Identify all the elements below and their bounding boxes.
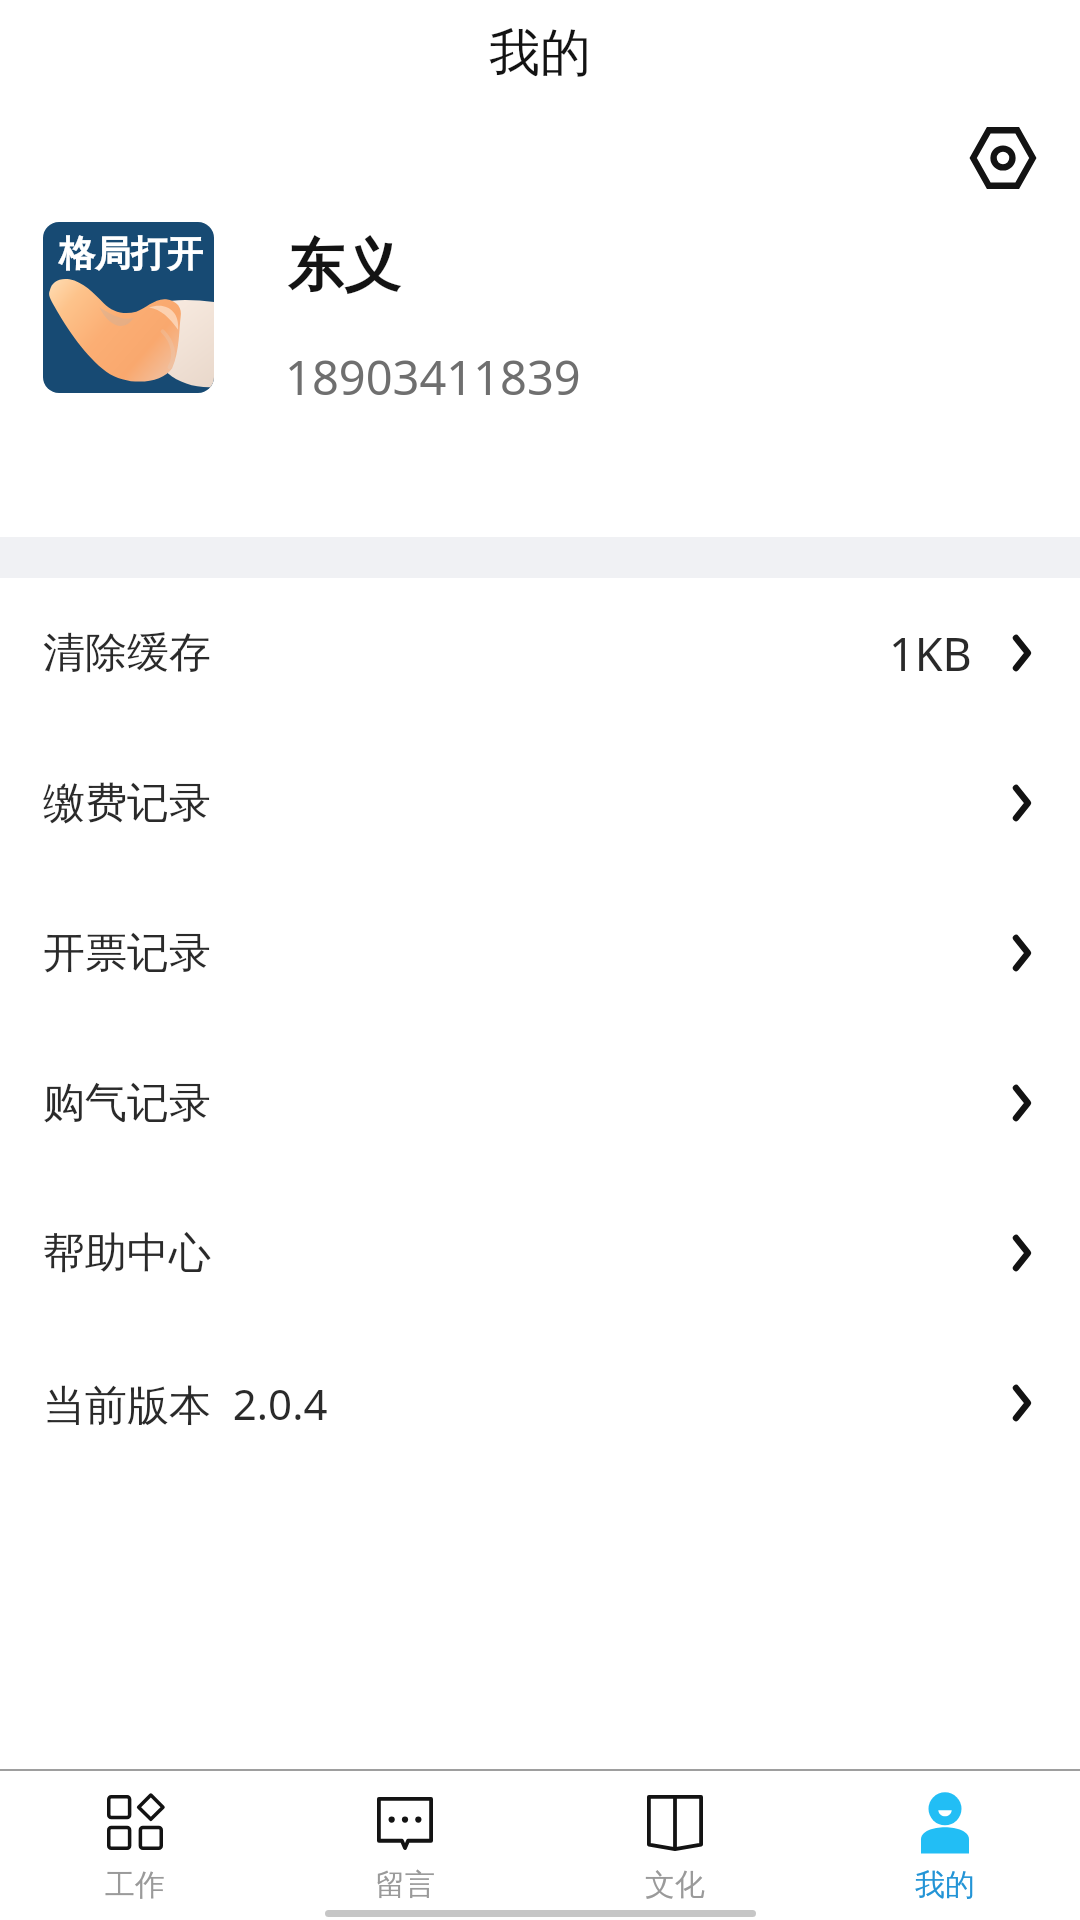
- button[interactable]: 当前版本 2.0.4: [0, 1328, 1080, 1478]
- staticText: 东义: [288, 231, 400, 302]
- staticText: 当前版本 2.0.4: [43, 1375, 328, 1432]
- button[interactable]: 缴费记录: [0, 728, 1080, 878]
- button[interactable]: 清除缓存: [0, 578, 1080, 728]
- staticText: 留言: [375, 1866, 435, 1904]
- staticText: 1KB: [889, 623, 972, 684]
- button[interactable]: 留言: [270, 1771, 540, 1920]
- staticText: 格局打开: [59, 231, 203, 276]
- staticText: 工作: [105, 1866, 165, 1904]
- button[interactable]: 我的: [810, 1771, 1080, 1920]
- button[interactable]: 文化: [540, 1771, 810, 1920]
- staticText: 清除缓存: [43, 627, 211, 680]
- button[interactable]: 帮助中心: [0, 1178, 1080, 1328]
- staticText: 文化: [645, 1866, 705, 1904]
- staticText: 缴费记录: [43, 777, 211, 830]
- staticText: 我的: [489, 21, 591, 85]
- button[interactable]: 工作: [0, 1771, 270, 1920]
- staticText: 帮助中心: [43, 1227, 211, 1280]
- staticText: 开票记录: [43, 927, 211, 980]
- button[interactable]: Settings: [961, 116, 1045, 200]
- staticText: 18903411839: [285, 345, 581, 409]
- staticText: 购气记录: [43, 1077, 211, 1130]
- button[interactable]: 开票记录: [0, 878, 1080, 1028]
- staticText: 我的: [915, 1866, 975, 1904]
- button[interactable]: 购气记录: [0, 1028, 1080, 1178]
